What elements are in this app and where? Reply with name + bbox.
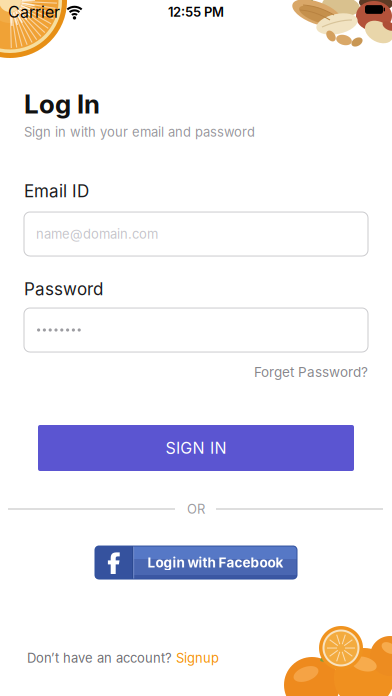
staticText: Login with Facebook — [147, 554, 283, 570]
staticText: SIGN IN — [166, 439, 226, 457]
staticText: Carrier — [8, 3, 60, 21]
staticText: 12:55 PM — [168, 4, 224, 20]
staticText: Signup — [176, 650, 219, 666]
button[interactable]: Forget Password? — [0, 364, 392, 380]
staticText: Email ID — [24, 181, 89, 201]
button[interactable]: Login with Facebook — [95, 546, 297, 579]
button[interactable]: Signup — [176, 650, 219, 666]
staticText: Forget Password? — [254, 364, 368, 380]
button[interactable]: name@domain.com — [24, 212, 368, 256]
staticText: Sign in with your email and password — [24, 124, 255, 140]
staticText: OR — [187, 501, 205, 517]
button[interactable] — [24, 308, 368, 352]
staticText: Password — [24, 279, 103, 299]
staticText: Log In — [24, 89, 100, 119]
staticText: Don’t have an account? — [27, 650, 172, 666]
button[interactable]: SIGN IN — [38, 425, 354, 471]
staticText: name@domain.com — [36, 226, 158, 242]
